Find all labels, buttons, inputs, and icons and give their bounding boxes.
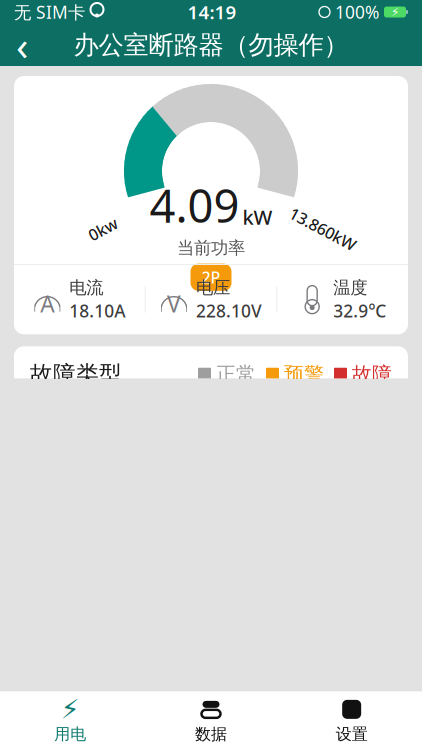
staticText: 18.10A bbox=[69, 299, 125, 322]
staticText: 32.9°C bbox=[333, 299, 386, 322]
staticText: 电压 bbox=[196, 277, 230, 298]
staticText: ⚡︎ bbox=[61, 694, 80, 724]
staticText: 无 SIM卡 bbox=[14, 0, 85, 23]
staticText: 设置 bbox=[336, 724, 368, 744]
staticText: 228.10V bbox=[196, 299, 262, 322]
staticText: 0kw bbox=[87, 218, 118, 240]
button[interactable]: 数据 bbox=[141, 691, 281, 750]
staticText: kW bbox=[242, 204, 272, 230]
button[interactable]: ⚡︎ bbox=[0, 691, 141, 750]
staticText: 100% bbox=[330, 0, 384, 23]
staticText: ⚡︎ bbox=[391, 5, 399, 19]
staticText: 预警 bbox=[284, 362, 324, 386]
staticText: 故障类型 bbox=[30, 360, 122, 388]
staticText: 4.09 bbox=[149, 175, 239, 235]
staticText: 故障 bbox=[352, 362, 392, 386]
staticText: 用电 bbox=[54, 724, 86, 744]
staticText: V bbox=[167, 289, 181, 319]
button[interactable]: 设置 bbox=[281, 691, 422, 750]
staticText: 2P bbox=[201, 267, 220, 288]
staticText: 电流 bbox=[69, 277, 103, 298]
staticText: 14:19 bbox=[187, 0, 236, 24]
staticText: ‹ bbox=[16, 18, 28, 71]
staticText: 温度 bbox=[333, 277, 367, 298]
staticText bbox=[84, 0, 90, 27]
staticText: 13.860kW bbox=[286, 218, 359, 240]
staticText: 当前功率 bbox=[177, 237, 245, 259]
button[interactable]: 返回 bbox=[0, 24, 44, 66]
staticText: 办公室断路器（勿操作） bbox=[73, 29, 348, 60]
staticText: 正常 bbox=[216, 362, 256, 386]
staticText: 数据 bbox=[195, 724, 227, 744]
staticText: A bbox=[40, 289, 54, 319]
